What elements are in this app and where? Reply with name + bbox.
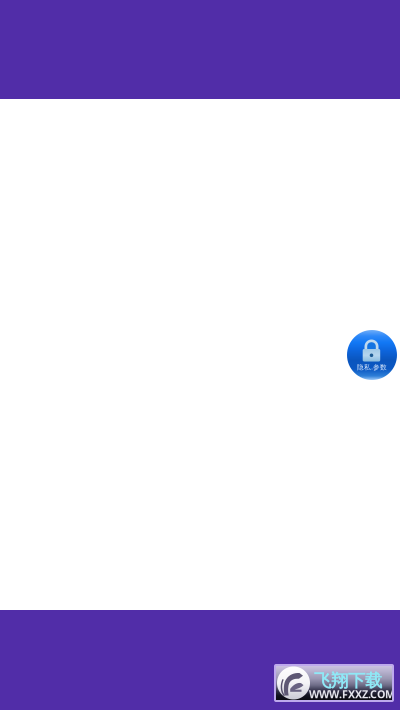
- staticText: 隐私.参数: [357, 363, 387, 371]
- button[interactable]: 隐私参数: [347, 330, 397, 380]
- staticText: 飞翔下载: [314, 670, 382, 691]
- staticText: WWW.FXXZ.COM: [309, 687, 395, 701]
